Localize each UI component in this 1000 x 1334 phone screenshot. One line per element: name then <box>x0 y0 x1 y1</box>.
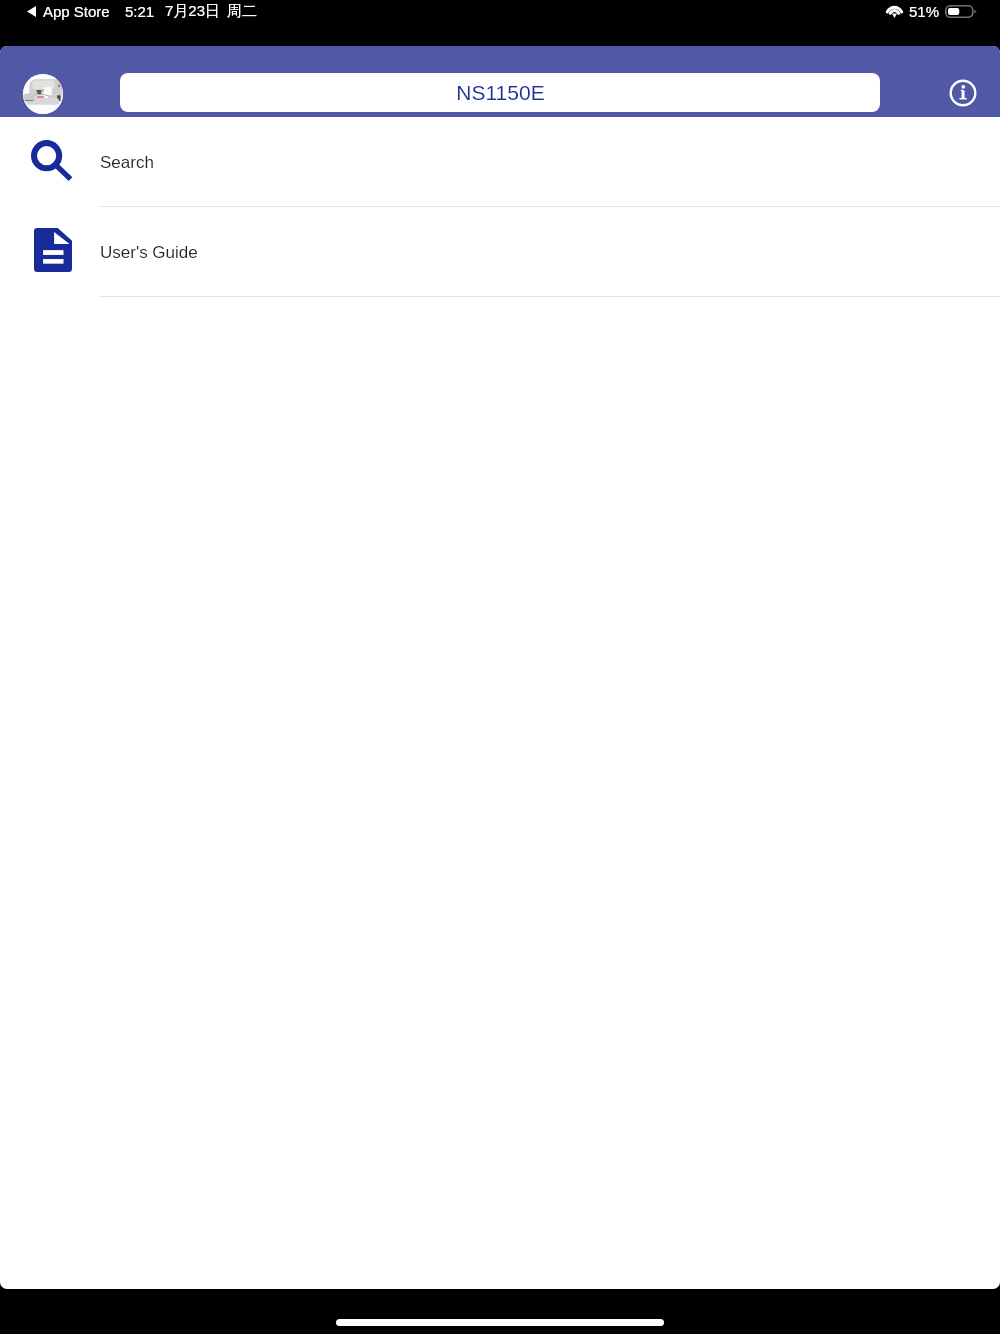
button[interactable]: User's Guide <box>0 207 1000 297</box>
staticText: 周二 <box>227 2 257 21</box>
staticText: Search <box>100 153 154 172</box>
button[interactable]: Profile <box>23 74 63 114</box>
staticText: 7月23日 <box>165 2 221 21</box>
button[interactable]: Search <box>0 117 1000 207</box>
button[interactable]: Information <box>941 71 985 115</box>
staticText: App Store <box>43 3 110 20</box>
staticText: NS1150E <box>456 81 545 104</box>
staticText: User's Guide <box>100 243 198 262</box>
button[interactable]: NS1150E <box>120 73 880 112</box>
staticText: 51% <box>909 3 940 20</box>
staticText: 5:21 <box>125 3 155 20</box>
